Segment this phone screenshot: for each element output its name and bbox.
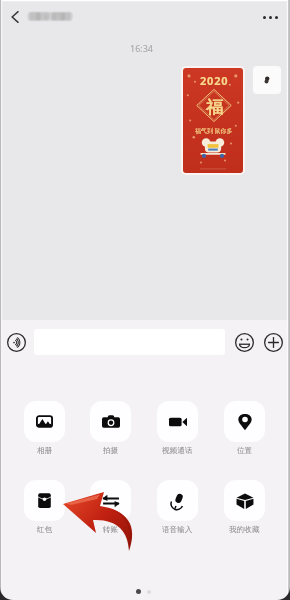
button[interactable]: Voice input bbox=[5, 331, 27, 353]
button[interactable]: Emoji bbox=[233, 331, 255, 353]
staticText: 拍摄 bbox=[103, 446, 119, 456]
button[interactable]: More bbox=[262, 331, 284, 353]
button[interactable]: 我的收藏 bbox=[217, 480, 272, 535]
staticText: 红包 bbox=[37, 525, 53, 535]
button[interactable]: 相册 bbox=[17, 401, 72, 456]
button[interactable]: 红包 bbox=[17, 480, 72, 535]
button[interactable]: 语音输入 bbox=[150, 480, 205, 535]
staticText: 我的收藏 bbox=[229, 525, 260, 535]
button[interactable]: Back bbox=[0, 2, 30, 32]
staticText: 相册 bbox=[37, 446, 53, 456]
button[interactable]: 拍摄 bbox=[83, 401, 138, 456]
staticText: 位置 bbox=[237, 446, 253, 456]
staticText: 语音输入 bbox=[162, 525, 193, 535]
staticText: 转账 bbox=[103, 525, 119, 535]
staticText: 16:34 bbox=[130, 42, 154, 54]
staticText: 福气到 鼠你多 bbox=[195, 127, 233, 135]
staticText: 福 bbox=[206, 97, 223, 118]
staticText: 视频通话 bbox=[162, 446, 193, 456]
staticText: 2020 bbox=[200, 73, 229, 88]
button[interactable]: 视频通话 bbox=[150, 401, 205, 456]
button[interactable]: 位置 bbox=[217, 401, 272, 456]
button[interactable]: Avatar bbox=[253, 66, 281, 94]
button[interactable]: More options bbox=[258, 8, 282, 26]
button[interactable]: 转账 bbox=[83, 480, 138, 535]
button[interactable]: New Year greeting image bbox=[181, 66, 245, 175]
